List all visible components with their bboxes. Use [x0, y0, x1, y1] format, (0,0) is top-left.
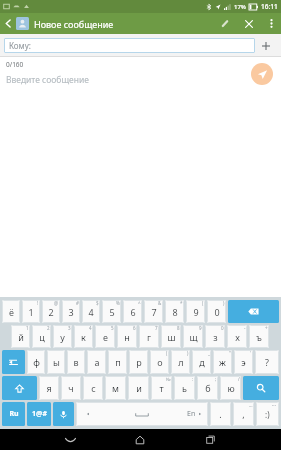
button[interactable]: м [105, 376, 126, 400]
button[interactable]: Attach [213, 13, 237, 34]
staticText: Введите сообщение [6, 74, 89, 86]
staticText: й [18, 331, 24, 343]
button[interactable]: ю [220, 376, 241, 400]
button[interactable]: н [117, 325, 137, 348]
staticText: т [159, 382, 164, 394]
button[interactable]: 3 [62, 300, 80, 323]
button[interactable]: ц [32, 325, 51, 348]
button[interactable]: Add recipient [255, 34, 277, 57]
button[interactable]: More options [261, 13, 281, 34]
staticText: с [91, 382, 96, 394]
button[interactable]: ъ [249, 325, 269, 348]
button[interactable]: в [67, 350, 85, 374]
button[interactable]: л [171, 350, 190, 374]
staticText: ) [223, 300, 225, 306]
staticText: - [244, 325, 246, 331]
button[interactable]: Voice input [53, 402, 74, 426]
staticText: 8 [172, 306, 178, 318]
button[interactable]: е [95, 325, 115, 348]
button[interactable]: Tab [2, 350, 25, 374]
button[interactable]: Recent apps [196, 429, 224, 450]
button[interactable]: Back [56, 429, 84, 450]
button[interactable]: и [128, 376, 149, 400]
button[interactable]: т [151, 376, 172, 400]
staticText: е [103, 331, 108, 343]
button[interactable]: 0 [207, 300, 226, 323]
staticText: ю [227, 382, 235, 394]
staticText: н [124, 331, 130, 343]
button[interactable]: с [83, 376, 103, 400]
button[interactable]: , [233, 402, 254, 426]
staticText: 7 [151, 306, 157, 318]
button[interactable]: Back [0, 13, 16, 34]
button[interactable]: 9 [186, 300, 205, 323]
button[interactable]: 6 [123, 300, 142, 323]
staticText: ! [37, 300, 39, 306]
button[interactable]: ы [47, 350, 65, 374]
button[interactable]: 1 [22, 300, 40, 323]
button[interactable]: 5 [102, 300, 121, 323]
button[interactable]: й [11, 325, 30, 348]
staticText: 0/160 [6, 60, 24, 69]
staticText: ж [219, 356, 226, 368]
button[interactable]: 7 [144, 300, 163, 323]
button[interactable]: ё [2, 300, 20, 323]
button[interactable]: о [150, 350, 169, 374]
staticText: 4 [89, 325, 92, 331]
button[interactable]: з [205, 325, 225, 348]
button[interactable]: ч [61, 376, 81, 400]
staticText: 1@# [32, 409, 47, 419]
button[interactable]: 4 [82, 300, 100, 323]
button[interactable]: я [39, 376, 59, 400]
staticText: 2 [47, 325, 50, 331]
staticText: ы [53, 356, 60, 368]
staticText: # [76, 300, 79, 306]
staticText: к [81, 331, 86, 343]
button[interactable]: г [139, 325, 159, 348]
button[interactable]: ь [174, 376, 195, 400]
button[interactable]: Home [126, 429, 154, 450]
button[interactable]: 1@# [27, 402, 51, 426]
button[interactable]: к [74, 325, 93, 348]
button[interactable]: б [197, 376, 218, 400]
button[interactable]: х [227, 325, 247, 348]
button[interactable]: п [108, 350, 127, 374]
button[interactable]: Backspace [228, 300, 279, 323]
button[interactable]: а [87, 350, 106, 374]
staticText: ц [39, 331, 45, 343]
staticText: ' [250, 350, 252, 356]
button[interactable]: Close [237, 13, 261, 34]
staticText: ; [215, 376, 217, 382]
button[interactable]: ж [213, 350, 232, 374]
button[interactable]: Emoji [256, 402, 279, 426]
staticText: 6 [130, 306, 136, 318]
button[interactable]: Space [76, 402, 208, 426]
staticText: я [46, 382, 52, 394]
staticText: ё [9, 306, 14, 318]
staticText: и [136, 382, 142, 394]
staticText: з [213, 331, 218, 343]
button[interactable]: ш [161, 325, 181, 348]
staticText: :) [265, 409, 270, 420]
staticText: Новое сообщение [34, 18, 114, 30]
staticText: р [136, 356, 142, 368]
button[interactable]: д [192, 350, 211, 374]
staticText: п [115, 356, 121, 368]
button[interactable]: Search [243, 376, 279, 400]
button[interactable]: . [210, 402, 231, 426]
button[interactable]: у [53, 325, 72, 348]
button[interactable]: ? [255, 350, 279, 374]
button[interactable]: щ [183, 325, 203, 348]
staticText: + [265, 325, 268, 331]
button[interactable]: 8 [165, 300, 184, 323]
button[interactable]: Кому: [4, 38, 255, 53]
button[interactable]: Send [251, 63, 273, 85]
button[interactable]: Shift [2, 376, 37, 400]
staticText: б [205, 382, 211, 394]
button[interactable]: р [129, 350, 148, 374]
button[interactable]: э [234, 350, 253, 374]
button[interactable]: Ru [2, 402, 25, 426]
staticText: в [73, 356, 79, 368]
button[interactable]: ф [27, 350, 45, 374]
button[interactable]: 2 [42, 300, 60, 323]
